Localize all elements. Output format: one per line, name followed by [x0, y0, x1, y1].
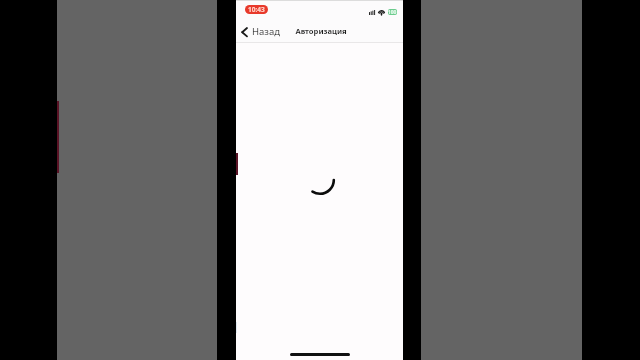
staticText: Назад: [252, 25, 281, 38]
button[interactable]: 10:43: [245, 5, 268, 14]
staticText: Авторизация: [295, 26, 347, 36]
button[interactable]: Назад: [238, 22, 281, 42]
staticText: 100: [388, 9, 397, 15]
other: Home indicator: [290, 353, 350, 356]
other: Loading: [304, 164, 336, 196]
staticText: 10:43: [248, 5, 265, 14]
other: Wi-Fi: [378, 9, 385, 15]
other: Cellular signal: [369, 10, 375, 15]
